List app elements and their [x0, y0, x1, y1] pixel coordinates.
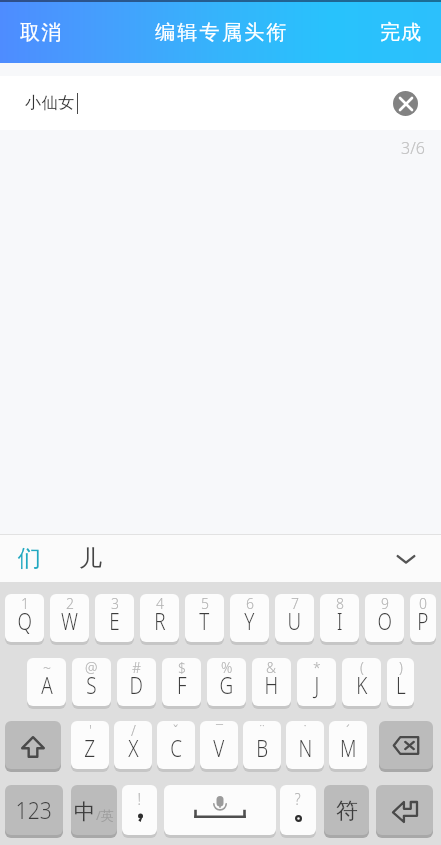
staticText: R	[154, 605, 166, 636]
staticText: *	[313, 658, 321, 677]
staticText: 2	[66, 594, 74, 613]
staticText: %	[221, 658, 233, 677]
staticText: K	[356, 669, 368, 700]
staticText: N	[298, 732, 312, 763]
staticText: 0	[419, 594, 427, 613]
staticText: #	[132, 658, 142, 677]
staticText: 完成	[380, 20, 423, 45]
button[interactable]: ˇ	[157, 721, 195, 769]
button[interactable]: 们	[9, 538, 50, 579]
button[interactable]: 7	[275, 594, 314, 642]
staticText: 3	[111, 594, 119, 613]
button[interactable]: 取消	[8, 12, 75, 53]
staticText: /英	[96, 806, 114, 824]
staticText: C	[170, 732, 183, 763]
button[interactable]: &	[252, 658, 291, 706]
staticText: J	[314, 669, 319, 700]
staticText: I	[337, 605, 343, 636]
button[interactable]: Period	[280, 785, 316, 835]
staticText: G	[219, 669, 233, 700]
button[interactable]: 儿	[70, 538, 111, 579]
button[interactable]: (	[342, 658, 381, 706]
staticText: H	[264, 669, 278, 700]
staticText: '	[89, 721, 92, 740]
button[interactable]: ~	[27, 658, 66, 706]
staticText: )	[399, 658, 403, 677]
staticText: B	[256, 732, 269, 763]
button[interactable]: Shift	[5, 721, 61, 769]
staticText: T	[199, 605, 210, 636]
button[interactable]: )	[387, 658, 414, 706]
staticText: 们	[18, 544, 41, 573]
button[interactable]: 2	[50, 594, 89, 642]
staticText: F	[177, 669, 187, 700]
button[interactable]: 8	[320, 594, 359, 642]
staticText: ˙	[304, 721, 307, 740]
staticText: 3/6	[401, 137, 425, 159]
staticText: 6	[246, 594, 254, 613]
staticText: ˇ	[173, 721, 179, 740]
staticText: Y	[244, 605, 255, 636]
staticText: Z	[84, 732, 96, 763]
button[interactable]: Enter	[376, 785, 433, 835]
button[interactable]: 完成	[368, 12, 435, 53]
button[interactable]: Numbers	[5, 785, 63, 835]
staticText: 编辑专属头衔	[155, 20, 289, 45]
staticText: A	[41, 669, 53, 700]
button[interactable]: Symbols	[324, 785, 369, 835]
staticText: 取消	[20, 20, 63, 45]
button[interactable]: Expand candidates	[389, 542, 423, 576]
button[interactable]: @	[72, 658, 111, 706]
staticText: S	[86, 669, 97, 700]
staticText: 1	[21, 594, 29, 613]
staticText: &	[266, 658, 277, 677]
staticText: U	[287, 605, 301, 636]
button[interactable]: ¯	[200, 721, 238, 769]
staticText: @	[85, 658, 98, 677]
staticText: E	[109, 605, 120, 636]
staticText: ~	[43, 658, 51, 677]
staticText: O	[378, 605, 392, 636]
staticText: Q	[18, 605, 32, 636]
button[interactable]: ˊ	[329, 721, 367, 769]
button[interactable]: Space	[164, 785, 276, 835]
staticText: $	[178, 658, 186, 677]
staticText: W	[61, 605, 78, 636]
button[interactable]: $	[162, 658, 201, 706]
button[interactable]: ˙	[286, 721, 324, 769]
staticText: D	[129, 669, 143, 700]
staticText: 7	[291, 594, 299, 613]
button[interactable]: #	[117, 658, 156, 706]
button[interactable]: *	[297, 658, 336, 706]
staticText: ?	[295, 787, 301, 810]
staticText: 符	[336, 797, 358, 825]
staticText: 9	[381, 594, 389, 613]
button[interactable]: 4	[140, 594, 179, 642]
staticText: V	[213, 732, 225, 763]
button[interactable]: Backspace	[379, 721, 433, 769]
staticText: ¯	[216, 721, 223, 740]
button[interactable]: 0	[410, 594, 436, 642]
staticText: !	[137, 787, 141, 810]
button[interactable]: /	[114, 721, 152, 769]
staticText: /	[131, 721, 136, 740]
staticText: 小仙女	[25, 93, 75, 113]
staticText: X	[128, 732, 139, 763]
button[interactable]: Switch Chinese English	[71, 785, 117, 835]
button[interactable]: 6	[230, 594, 269, 642]
staticText: 8	[336, 594, 344, 613]
button[interactable]: 9	[365, 594, 404, 642]
staticText: ˊ	[346, 721, 350, 740]
button[interactable]: ¨	[243, 721, 281, 769]
button[interactable]: 3	[95, 594, 134, 642]
button[interactable]: 5	[185, 594, 224, 642]
button[interactable]: Comma	[122, 785, 157, 835]
button[interactable]: 1	[5, 594, 44, 642]
button[interactable]: '	[71, 721, 109, 769]
staticText: 5	[201, 594, 209, 613]
staticText: M	[340, 732, 357, 763]
button[interactable]: Clear text	[393, 91, 418, 116]
button[interactable]: %	[207, 658, 246, 706]
staticText: L	[396, 669, 406, 700]
staticText: 中	[74, 798, 96, 825]
